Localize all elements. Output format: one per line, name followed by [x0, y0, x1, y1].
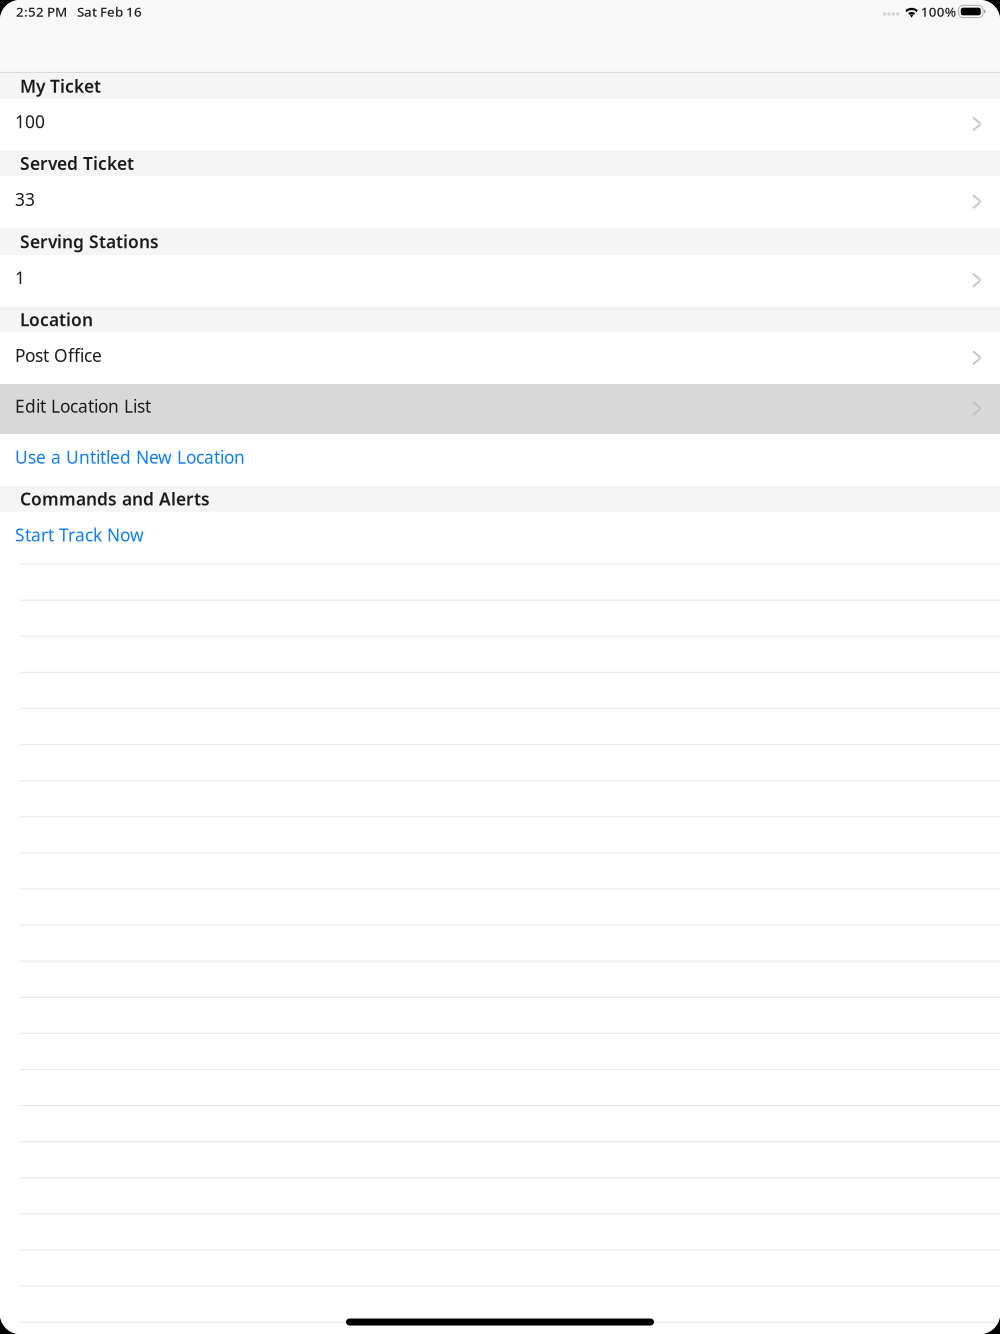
staticText: Commands and Alerts [20, 487, 210, 510]
button[interactable]: 100 [0, 99, 1000, 150]
button[interactable]: 33 [0, 176, 1000, 228]
staticText: 100 [15, 110, 45, 133]
staticText: Sat Feb 16 [77, 3, 142, 20]
button[interactable]: Start Track Now [0, 512, 1000, 563]
staticText: Use a Untitled New Location [15, 445, 245, 468]
button[interactable]: Post Office [0, 333, 1000, 384]
staticText: My Ticket [20, 74, 101, 97]
staticText: 2:52 PM [16, 3, 67, 20]
staticText: 1 [15, 266, 25, 289]
staticText: Post Office [15, 344, 102, 367]
staticText: Served Ticket [20, 152, 134, 175]
button[interactable]: 1 [0, 255, 1000, 306]
button[interactable]: Edit Location List [0, 384, 1000, 434]
staticText: Location [20, 308, 93, 331]
staticText: 33 [15, 188, 35, 211]
staticText: Serving Stations [20, 230, 159, 253]
button[interactable]: Use a Untitled New Location [0, 434, 1000, 486]
staticText: 100% [921, 3, 956, 20]
staticText: Edit Location List [15, 394, 151, 417]
staticText: Start Track Now [15, 523, 144, 546]
